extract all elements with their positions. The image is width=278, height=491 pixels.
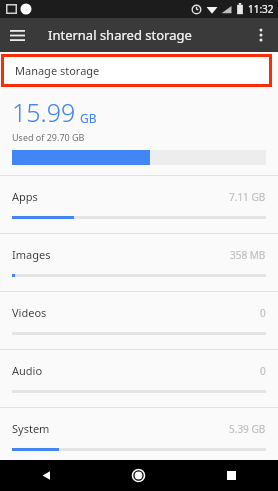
- button[interactable]: Manage storage: [4, 57, 269, 84]
- button[interactable]: Home: [92, 460, 185, 491]
- staticText: 5.39 GB: [229, 422, 266, 436]
- staticText: 0: [260, 364, 266, 378]
- staticText: Manage storage: [15, 63, 100, 78]
- staticText: 7.11 GB: [229, 190, 266, 204]
- staticText: System: [12, 421, 50, 436]
- staticText: Videos: [12, 305, 47, 320]
- button[interactable]: Videos: [0, 291, 278, 349]
- button[interactable]: Images: [0, 233, 278, 291]
- button[interactable]: Apps: [0, 175, 278, 233]
- staticText: GB: [80, 110, 97, 126]
- staticText: Apps: [12, 189, 38, 204]
- button[interactable]: More options: [244, 18, 278, 52]
- staticText: Audio: [12, 363, 43, 378]
- button[interactable]: Recent apps: [185, 460, 278, 491]
- staticText: 0: [260, 306, 266, 320]
- button[interactable]: Open navigation menu: [0, 18, 34, 52]
- button[interactable]: Audio: [0, 349, 278, 407]
- staticText: 15.99: [12, 95, 76, 129]
- staticText: 11:32: [248, 2, 274, 16]
- staticText: Images: [12, 247, 51, 262]
- button[interactable]: System: [0, 407, 278, 460]
- staticText: Internal shared storage: [48, 26, 192, 44]
- staticText: Used of 29.70 GB: [12, 131, 85, 143]
- staticText: 358 MB: [230, 248, 266, 262]
- button[interactable]: Back: [0, 460, 92, 491]
